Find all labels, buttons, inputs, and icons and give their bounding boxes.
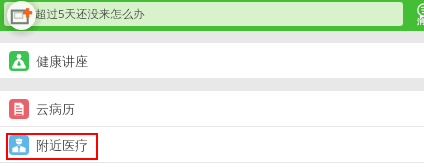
button[interactable]: 附近医疗: [0, 127, 424, 162]
staticText: 云病历: [36, 101, 75, 117]
button[interactable]: 新增: [7, 1, 36, 30]
button[interactable]: 云病历: [0, 91, 424, 126]
staticText: 超过5天还没来怎么办: [35, 6, 146, 22]
button[interactable]: 消息: [402, 0, 424, 31]
staticText: 健康讲座: [36, 53, 88, 69]
staticText: 消息: [417, 17, 424, 26]
staticText: 附近医疗: [36, 137, 88, 153]
button[interactable]: 超过5天还没来怎么办: [4, 2, 403, 26]
button[interactable]: 健康讲座: [0, 43, 424, 78]
